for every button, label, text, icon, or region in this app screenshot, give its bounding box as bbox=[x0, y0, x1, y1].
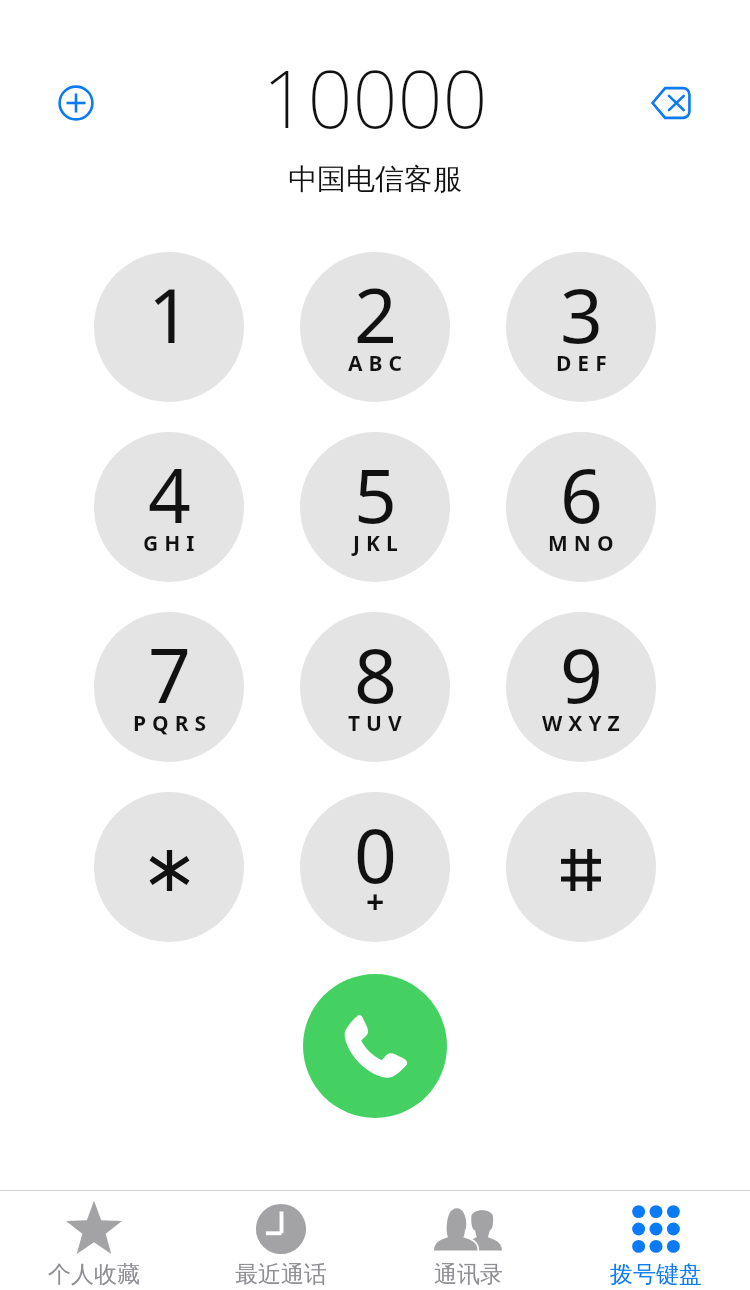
button[interactable]: 0 bbox=[300, 792, 450, 942]
staticText: 7 bbox=[148, 623, 191, 725]
staticText: + bbox=[366, 880, 385, 924]
staticText: 10000 bbox=[262, 44, 488, 152]
staticText: 2 bbox=[354, 263, 397, 365]
button[interactable]: 3 bbox=[506, 252, 656, 402]
staticText: ABC bbox=[348, 349, 408, 378]
button[interactable]: Call bbox=[303, 974, 447, 1118]
button[interactable]: 拨号键盘 bbox=[562, 1191, 750, 1290]
button[interactable]: 5 bbox=[300, 432, 450, 582]
staticText: 4 bbox=[148, 443, 191, 545]
staticText: 1 bbox=[148, 263, 191, 365]
button[interactable]: 2 bbox=[300, 252, 450, 402]
button[interactable]: 最近通话 bbox=[187, 1191, 374, 1290]
button[interactable]: 7 bbox=[94, 612, 244, 762]
staticText: 3 bbox=[560, 263, 603, 365]
staticText: 9 bbox=[560, 623, 603, 725]
staticText: TUV bbox=[348, 709, 408, 738]
staticText: 8 bbox=[354, 623, 397, 725]
button[interactable]: Star key bbox=[94, 792, 244, 942]
staticText: 中国电信客服 bbox=[288, 161, 462, 198]
staticText: DEF bbox=[556, 349, 613, 378]
staticText: 通讯录 bbox=[434, 1260, 503, 1289]
button[interactable]: Add contact bbox=[46, 73, 106, 133]
staticText: 6 bbox=[560, 443, 603, 545]
button[interactable]: Backspace bbox=[641, 73, 701, 133]
staticText: 0 bbox=[354, 803, 397, 905]
button[interactable]: 8 bbox=[300, 612, 450, 762]
staticText: GHI bbox=[143, 529, 201, 558]
staticText: 最近通话 bbox=[235, 1260, 327, 1289]
staticText: PQRS bbox=[133, 709, 212, 738]
button[interactable]: 通讯录 bbox=[374, 1191, 562, 1290]
staticText: 个人收藏 bbox=[48, 1260, 140, 1289]
button[interactable]: 6 bbox=[506, 432, 656, 582]
staticText: JKL bbox=[353, 529, 404, 558]
button[interactable]: 9 bbox=[506, 612, 656, 762]
staticText: 5 bbox=[354, 443, 397, 545]
staticText: WXYZ bbox=[542, 709, 626, 738]
staticText: 拨号键盘 bbox=[610, 1260, 702, 1289]
button[interactable]: Pound key bbox=[506, 792, 656, 942]
button[interactable]: 个人收藏 bbox=[0, 1191, 187, 1290]
button[interactable]: 1 bbox=[94, 252, 244, 402]
staticText: MNO bbox=[548, 529, 620, 558]
button[interactable]: 4 bbox=[94, 432, 244, 582]
